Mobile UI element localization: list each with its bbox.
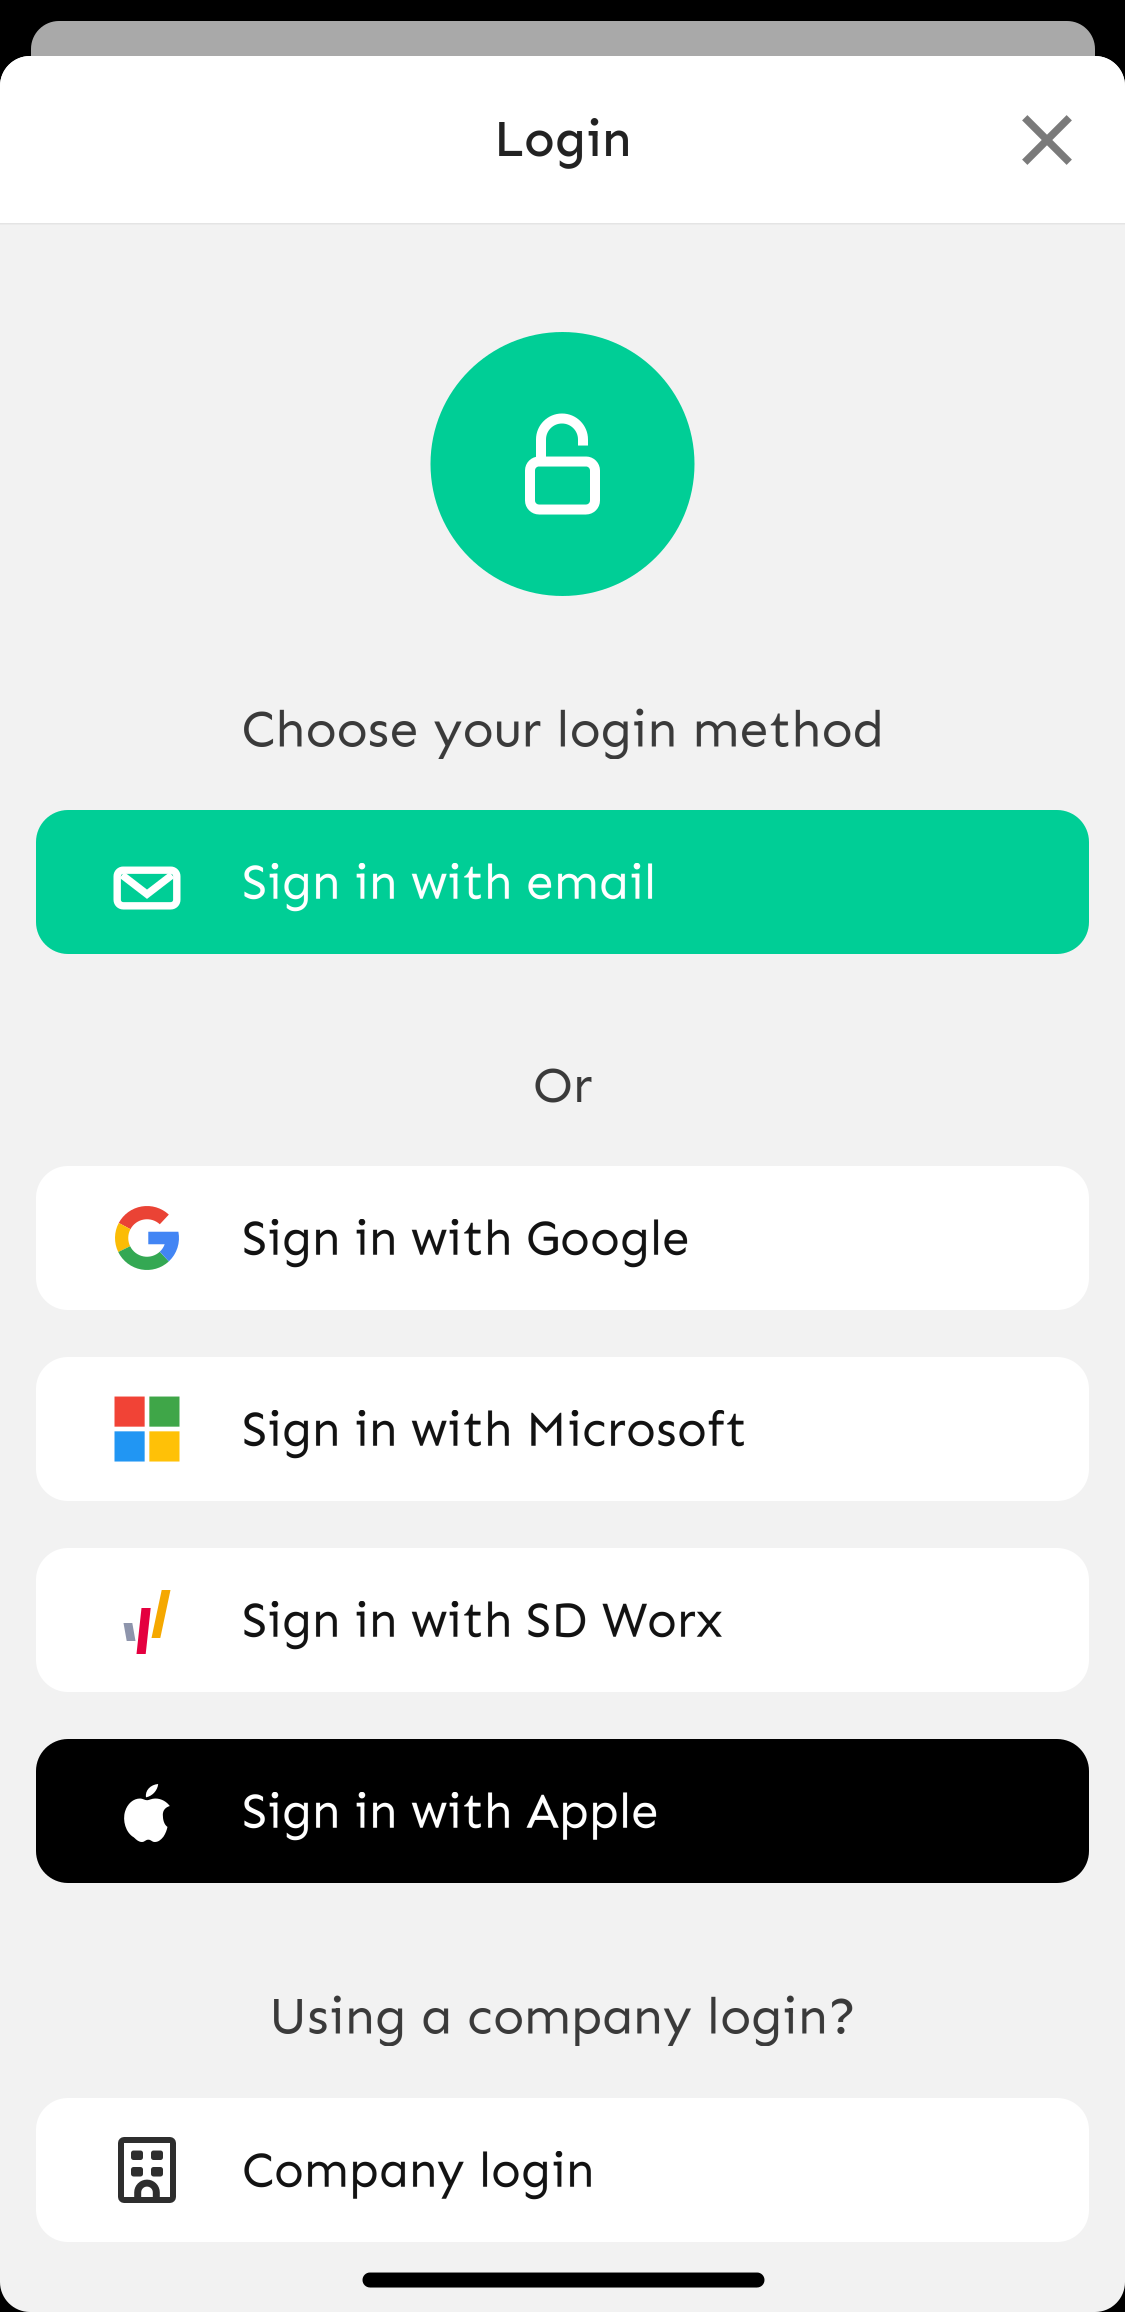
staticText: Login <box>494 108 631 169</box>
staticText: Sign in with email <box>242 852 656 912</box>
staticText: Sign in with SD Worx <box>242 1590 723 1650</box>
staticText: Using a company login? <box>269 1985 856 2047</box>
staticText: Choose your login method <box>241 698 883 760</box>
button[interactable]: Sign in with Google <box>36 1166 1089 1310</box>
button[interactable]: Close <box>991 84 1103 196</box>
staticText: Sign in with Microsoft <box>242 1399 747 1459</box>
button[interactable]: Sign in with SD Worx <box>36 1548 1089 1692</box>
button[interactable]: Sign in with Apple <box>36 1739 1089 1883</box>
staticText: Or <box>533 1054 592 1115</box>
staticText: Company login <box>242 2140 594 2200</box>
staticText: Sign in with Apple <box>242 1781 659 1841</box>
button[interactable]: Sign in with Microsoft <box>36 1357 1089 1501</box>
staticText: Sign in with Google <box>242 1208 690 1268</box>
button[interactable]: Company login <box>36 2098 1089 2242</box>
button[interactable]: Sign in with email <box>36 810 1089 954</box>
